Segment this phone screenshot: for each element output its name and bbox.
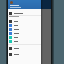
button[interactable] xyxy=(7,35,41,39)
button[interactable] xyxy=(7,11,41,15)
button[interactable] xyxy=(7,31,41,35)
button[interactable] xyxy=(7,0,41,9)
button[interactable] xyxy=(7,39,41,43)
button[interactable] xyxy=(7,19,41,23)
button[interactable] xyxy=(7,23,41,27)
button[interactable]: Account avatar xyxy=(10,1,13,4)
button[interactable] xyxy=(7,52,41,56)
button[interactable] xyxy=(7,27,41,31)
button[interactable] xyxy=(7,46,41,50)
